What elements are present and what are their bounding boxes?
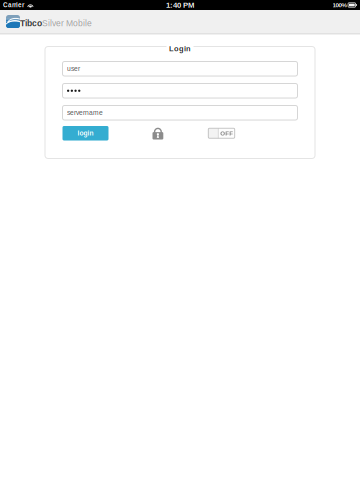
button[interactable]: Remember me	[208, 128, 235, 138]
staticText: Carrier	[3, 1, 24, 8]
staticText: servername	[67, 109, 103, 116]
button[interactable]: login	[62, 126, 108, 140]
staticText: OFF	[220, 130, 233, 137]
staticText: login	[77, 129, 93, 137]
staticText: 1:40 PM	[166, 1, 194, 9]
staticText: Silver Mobile	[42, 18, 92, 28]
staticText: user	[67, 65, 80, 72]
staticText: Tibco	[20, 18, 42, 28]
staticText: 100%	[333, 2, 347, 8]
button[interactable]: Secure connection	[152, 127, 163, 139]
staticText: Login	[169, 44, 191, 53]
